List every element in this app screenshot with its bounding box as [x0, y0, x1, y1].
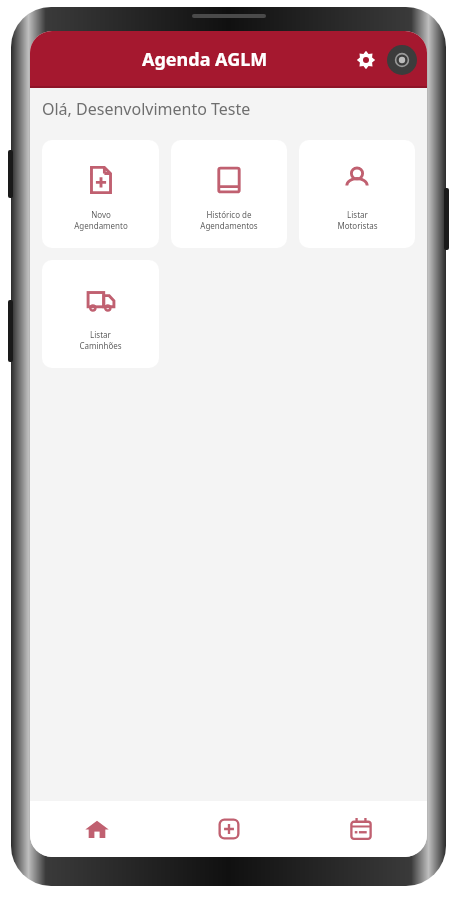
- staticText: Motoristas: [337, 220, 378, 231]
- staticText: Histórico de: [206, 209, 252, 220]
- staticText: Agendamento: [74, 220, 128, 231]
- staticText: Listar: [90, 329, 111, 340]
- button[interactable]: New appointment: [163, 801, 295, 857]
- button[interactable]: Histórico de: [171, 140, 287, 248]
- staticText: Olá, Desenvolvimento Teste: [42, 98, 251, 120]
- staticText: Novo: [91, 209, 111, 220]
- button[interactable]: Settings: [349, 43, 383, 77]
- staticText: Agenda AGLM: [142, 47, 268, 72]
- staticText: Caminhões: [79, 340, 122, 351]
- staticText: Agendamentos: [200, 220, 258, 231]
- button[interactable]: Calendar: [295, 801, 427, 857]
- button[interactable]: Profile: [387, 45, 417, 75]
- staticText: Listar: [347, 209, 368, 220]
- button[interactable]: Home: [30, 801, 163, 857]
- button[interactable]: Novo: [42, 140, 159, 248]
- button[interactable]: Listar: [42, 260, 159, 368]
- button[interactable]: Listar: [299, 140, 415, 248]
